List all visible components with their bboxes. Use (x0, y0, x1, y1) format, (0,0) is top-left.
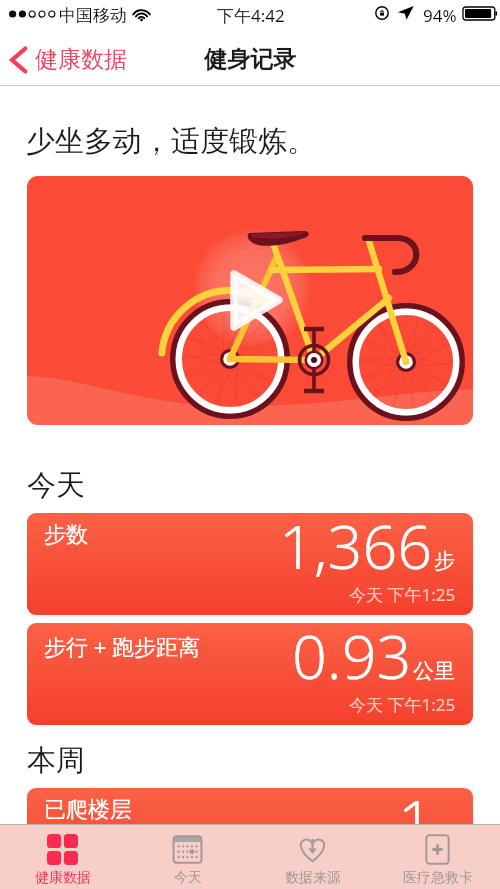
staticText: 步行 + 跑步距离 (44, 631, 201, 661)
staticText: 健康数据 (35, 869, 91, 887)
staticText: 下午4:42 (217, 4, 285, 27)
staticText: 步数 (44, 521, 88, 549)
button[interactable]: 健康数据 (0, 825, 125, 889)
button[interactable]: 健康数据 (10, 34, 127, 85)
button[interactable]: 步行 + 跑步距离 (27, 623, 473, 725)
staticText: 医疗急救卡 (403, 869, 473, 887)
staticText: 今天 (174, 869, 202, 887)
staticText: 今天 (27, 467, 85, 504)
staticText: 少坐多动，适度锻炼。 (26, 123, 316, 160)
staticText: 公里 (413, 658, 455, 684)
staticText: 今天 下午1:25 (349, 858, 456, 881)
button[interactable]: 已爬楼层 (27, 788, 473, 889)
staticText: 层 (434, 823, 455, 849)
staticText: 已爬楼层 (44, 796, 132, 824)
button[interactable]: 步数 (27, 513, 473, 615)
staticText: 94% (423, 4, 457, 27)
button[interactable]: 数据来源 (250, 825, 375, 889)
staticText: 步 (434, 548, 455, 574)
staticText: 1,366 (279, 513, 433, 587)
staticText: 中国移动 (59, 5, 127, 26)
button[interactable]: 医疗急救卡 (375, 825, 500, 889)
staticText: 今天 下午1:25 (349, 583, 456, 606)
staticText: 今天 下午1:25 (349, 693, 456, 716)
staticText: 健身记录 (204, 45, 296, 74)
button[interactable]: 今天 (125, 825, 250, 889)
staticText: 1 (398, 788, 433, 862)
staticText: 健康数据 (35, 45, 127, 74)
staticText: 本周 (27, 742, 85, 779)
button[interactable] (27, 176, 473, 425)
staticText: 数据来源 (285, 869, 341, 887)
staticText: 0.93 (292, 623, 412, 697)
